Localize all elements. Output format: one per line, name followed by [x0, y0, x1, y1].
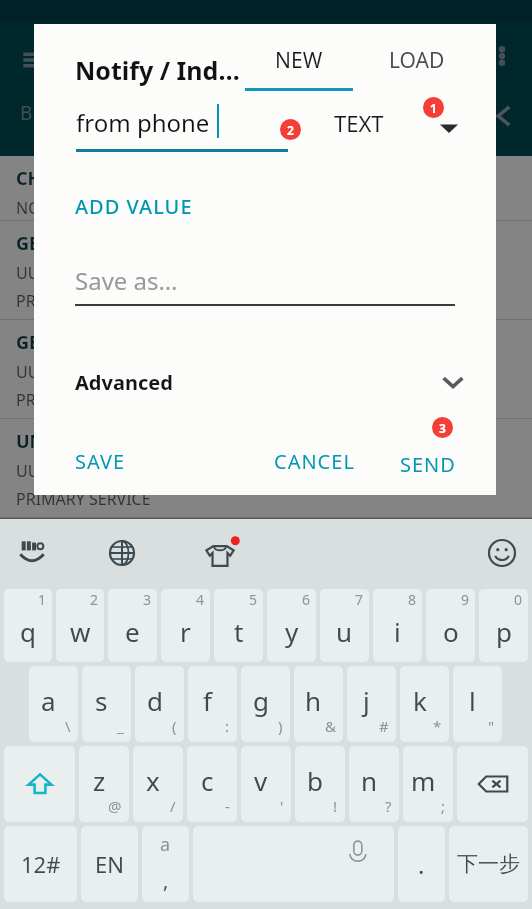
button[interactable]: a: [142, 826, 189, 902]
button[interactable]: .: [398, 826, 445, 902]
staticText: a: [160, 832, 171, 857]
button[interactable]: Space: [193, 826, 394, 902]
button[interactable]: Collapse: [480, 92, 528, 140]
button[interactable]: 2: [56, 589, 104, 662]
button[interactable]: s: [82, 666, 131, 742]
button[interactable]: Menu: [10, 32, 66, 88]
button[interactable]: Save as…: [75, 264, 455, 306]
staticText: e: [125, 614, 140, 649]
button[interactable]: b: [295, 746, 345, 822]
staticText: n: [361, 763, 378, 798]
button[interactable]: 5: [214, 589, 263, 662]
button[interactable]: 7: [320, 589, 369, 662]
staticText: t: [234, 614, 244, 649]
staticText: 8: [408, 590, 417, 609]
staticText: \: [65, 716, 71, 736]
button[interactable]: Emoji: [478, 529, 526, 577]
staticText: ,: [163, 867, 169, 894]
button[interactable]: GENERIC: [0, 320, 532, 418]
staticText: y: [285, 614, 299, 649]
staticText: ;: [441, 796, 446, 816]
button[interactable]: f: [188, 666, 237, 742]
button[interactable]: NEW: [245, 46, 353, 92]
staticText: PROPERTY: READ: [16, 290, 144, 312]
staticText: f: [203, 683, 212, 718]
staticText: EN: [95, 849, 124, 879]
button[interactable]: Advanced: [64, 354, 466, 410]
staticText: UUID: 0xFFF1: [16, 460, 117, 482]
button[interactable]: GENERIC: [0, 221, 532, 319]
button[interactable]: v: [241, 746, 291, 822]
staticText: d: [147, 683, 163, 718]
staticText: 下一步: [457, 851, 520, 877]
button[interactable]: 6: [267, 589, 316, 662]
button[interactable]: CHARACTERISTIC: [0, 156, 532, 220]
button[interactable]: Themes: [194, 527, 246, 579]
staticText: b: [307, 763, 323, 798]
button[interactable]: ADD VALUE: [64, 184, 224, 228]
staticText: i: [394, 614, 401, 649]
button[interactable]: z: [79, 746, 129, 822]
staticText: ?: [385, 796, 392, 816]
staticText: SEND: [400, 451, 456, 478]
button[interactable]: a: [29, 666, 78, 742]
staticText: CHARACTERISTIC: [16, 166, 168, 191]
button[interactable]: h: [294, 666, 343, 742]
button[interactable]: EN: [81, 826, 138, 902]
button[interactable]: TEXT: [322, 100, 482, 156]
staticText: Advanced: [75, 369, 173, 396]
button[interactable]: 1: [4, 589, 52, 662]
staticText: NOTIFY: [16, 197, 72, 219]
staticText: ': [280, 796, 284, 816]
button[interactable]: Handwriting: [8, 529, 56, 577]
button[interactable]: SAVE: [64, 439, 164, 483]
staticText: UUID: 0x2A01: [16, 361, 121, 383]
staticText: /: [170, 796, 176, 816]
button[interactable]: from phone: [76, 104, 288, 152]
staticText: #: [379, 716, 389, 736]
button[interactable]: Change language: [98, 529, 146, 577]
button[interactable]: 4: [161, 589, 210, 662]
button[interactable]: More options: [478, 32, 526, 80]
button[interactable]: x: [133, 746, 183, 822]
button[interactable]: g: [241, 666, 290, 742]
staticText: from phone: [76, 106, 210, 139]
button[interactable]: m: [403, 746, 453, 822]
button[interactable]: Backspace: [457, 746, 528, 822]
button[interactable]: n: [349, 746, 399, 822]
staticText: w: [70, 614, 91, 649]
button[interactable]: 0: [479, 589, 528, 662]
staticText: Notify / Ind…: [75, 53, 240, 87]
staticText: s: [95, 683, 108, 718]
staticText: h: [305, 683, 322, 718]
staticText: 5: [249, 590, 258, 609]
staticText: &: [325, 716, 336, 736]
button[interactable]: Shift: [4, 746, 75, 822]
button[interactable]: j: [347, 666, 396, 742]
button[interactable]: 3: [108, 589, 157, 662]
staticText: GENERIC: [16, 330, 95, 355]
staticText: CANCEL: [274, 448, 355, 475]
button[interactable]: k: [400, 666, 449, 742]
button[interactable]: 12#: [4, 826, 77, 902]
staticText: ": [488, 716, 495, 736]
button[interactable]: UNKNOWN: [0, 419, 532, 517]
button[interactable]: LOAD: [361, 46, 473, 92]
button[interactable]: CANCEL: [274, 439, 394, 483]
staticText: m: [411, 763, 436, 798]
button[interactable]: 8: [373, 589, 422, 662]
button[interactable]: d: [135, 666, 184, 742]
staticText: :: [225, 716, 230, 736]
staticText: u: [336, 614, 353, 649]
staticText: SAVE: [75, 448, 126, 475]
staticText: o: [443, 614, 459, 649]
staticText: GENERIC: [16, 231, 95, 256]
button[interactable]: 下一步: [449, 826, 528, 902]
button[interactable]: c: [187, 746, 237, 822]
staticText: 6: [302, 590, 311, 609]
staticText: 4: [196, 590, 205, 609]
button[interactable]: l: [453, 666, 502, 742]
button[interactable]: SEND: [394, 439, 484, 483]
staticText: k: [413, 683, 427, 718]
button[interactable]: 9: [426, 589, 475, 662]
